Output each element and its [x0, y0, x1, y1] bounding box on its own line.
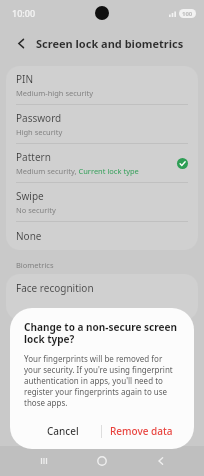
- button[interactable]: Back: [146, 446, 176, 476]
- button[interactable]: Cancel: [24, 419, 101, 443]
- staticText: Password: [16, 111, 62, 125]
- button[interactable]: Remove data: [102, 419, 180, 443]
- staticText: None: [16, 229, 42, 243]
- button[interactable]: Home: [87, 446, 117, 476]
- staticText: Screen lock and biometrics: [36, 36, 184, 51]
- staticText: Remove data: [110, 424, 173, 438]
- button[interactable]: Swipe: [6, 183, 198, 221]
- button[interactable]: Pattern: [6, 144, 198, 182]
- staticText: Pattern: [16, 150, 51, 164]
- staticText: 10:00: [12, 7, 36, 19]
- staticText: Your fingerprints will be removed for yo…: [24, 353, 180, 408]
- button[interactable]: Password: [6, 105, 198, 143]
- staticText: 100: [182, 10, 193, 18]
- staticText: Cancel: [47, 424, 79, 438]
- staticText: Biometrics: [16, 260, 54, 270]
- button[interactable]: PIN: [6, 66, 198, 104]
- staticText: High security: [16, 127, 63, 137]
- staticText: No security: [16, 205, 56, 215]
- button[interactable]: Back: [10, 32, 32, 54]
- button[interactable]: None: [6, 222, 198, 250]
- staticText: Medium security, Current lock type: [16, 166, 139, 176]
- staticText: Face recognition: [16, 281, 94, 295]
- button[interactable]: Face recognition: [6, 274, 198, 320]
- button[interactable]: Recents: [29, 446, 59, 476]
- staticText: Medium-high security: [16, 88, 94, 98]
- staticText: Change to a non-secure screen lock type?: [24, 320, 180, 346]
- staticText: PIN: [16, 72, 34, 86]
- staticText: Swipe: [16, 189, 44, 203]
